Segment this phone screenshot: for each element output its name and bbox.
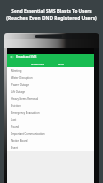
staticText: Lost <box>11 118 17 122</box>
button[interactable]: Water Disruption <box>7 74 94 81</box>
button[interactable]: Emergency Evacuation <box>7 109 94 116</box>
staticText: Found <box>11 125 19 129</box>
staticText: Water Disruption <box>11 76 33 80</box>
staticText: TEMPLATES <box>31 62 44 65</box>
staticText: Important Communication <box>11 132 45 136</box>
staticText: (Reaches Even DND Registered Users) <box>6 15 97 22</box>
staticText: Event <box>11 146 19 150</box>
button[interactable]: Important Communication <box>7 130 94 137</box>
staticText: Heavy Items Removal <box>11 97 39 101</box>
button[interactable]: Lift Outage <box>7 88 94 95</box>
button[interactable]: TEMPLATES <box>25 60 49 67</box>
button[interactable]: Power Outage <box>7 81 94 88</box>
button[interactable]: SENT <box>49 60 73 67</box>
button[interactable]: Lost <box>7 116 94 123</box>
staticText: Broadcast SMS <box>16 55 37 59</box>
other: Back <box>10 55 14 59</box>
staticText: Notice Board <box>11 139 28 143</box>
staticText: Meeting <box>11 69 22 73</box>
staticText: Emergency Evacuation <box>11 111 40 115</box>
staticText: Power Outage <box>11 83 30 87</box>
staticText: SENT <box>58 62 64 65</box>
button[interactable]: Notice Board <box>7 137 94 144</box>
button[interactable]: Meeting <box>7 67 94 74</box>
button[interactable]: Event <box>7 144 94 151</box>
button[interactable]: Back <box>7 54 94 60</box>
button[interactable]: Found <box>7 123 94 130</box>
staticText: Lift Outage <box>11 90 26 94</box>
button[interactable]: Heavy Items Removal <box>7 95 94 102</box>
staticText: Eviction <box>11 104 21 108</box>
button[interactable]: Eviction <box>7 102 94 109</box>
staticText: Send Essential SMS Blasts To Users <box>11 8 92 14</box>
